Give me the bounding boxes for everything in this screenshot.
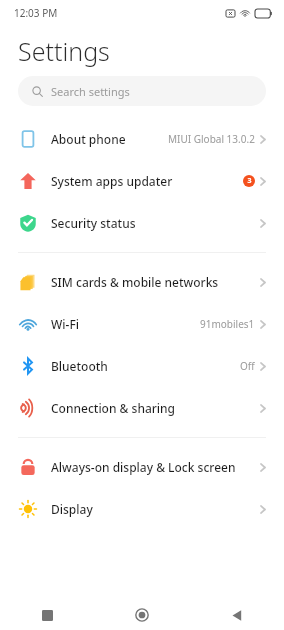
staticText: About phone [51, 131, 168, 147]
staticText: MIUI Global 13.0.2 [168, 132, 255, 146]
button[interactable]: Recent apps [0, 600, 94, 630]
staticText: 12:03 PM [14, 6, 58, 20]
button[interactable]: About phone [0, 118, 284, 160]
button[interactable]: SIM cards & mobile networks [0, 261, 284, 303]
button[interactable]: Home [94, 600, 189, 630]
button[interactable]: Bluetooth [0, 345, 284, 387]
staticText: Off [240, 359, 255, 373]
staticText: System apps updater [51, 173, 243, 189]
staticText: Security status [51, 215, 260, 231]
staticText: Wi-Fi [51, 316, 200, 332]
button[interactable]: Always-on display & Lock screen [0, 446, 284, 488]
staticText: 3 [247, 176, 252, 186]
button[interactable]: Connection & sharing [0, 387, 284, 429]
button[interactable]: Search settings [18, 76, 266, 106]
button[interactable]: Back [189, 600, 284, 630]
staticText: Connection & sharing [51, 400, 260, 416]
staticText: Always-on display & Lock screen [51, 459, 260, 475]
staticText: 91mobiles1 [200, 317, 255, 331]
staticText: Display [51, 501, 260, 517]
staticText: Bluetooth [51, 358, 240, 374]
staticText: SIM cards & mobile networks [51, 274, 260, 290]
staticText: Search settings [51, 84, 130, 99]
button[interactable]: Wi-Fi [0, 303, 284, 345]
button[interactable]: Security status [0, 202, 284, 244]
button[interactable]: System apps updater [0, 160, 284, 202]
button[interactable]: Display [0, 488, 284, 530]
staticText: Settings [18, 34, 110, 68]
